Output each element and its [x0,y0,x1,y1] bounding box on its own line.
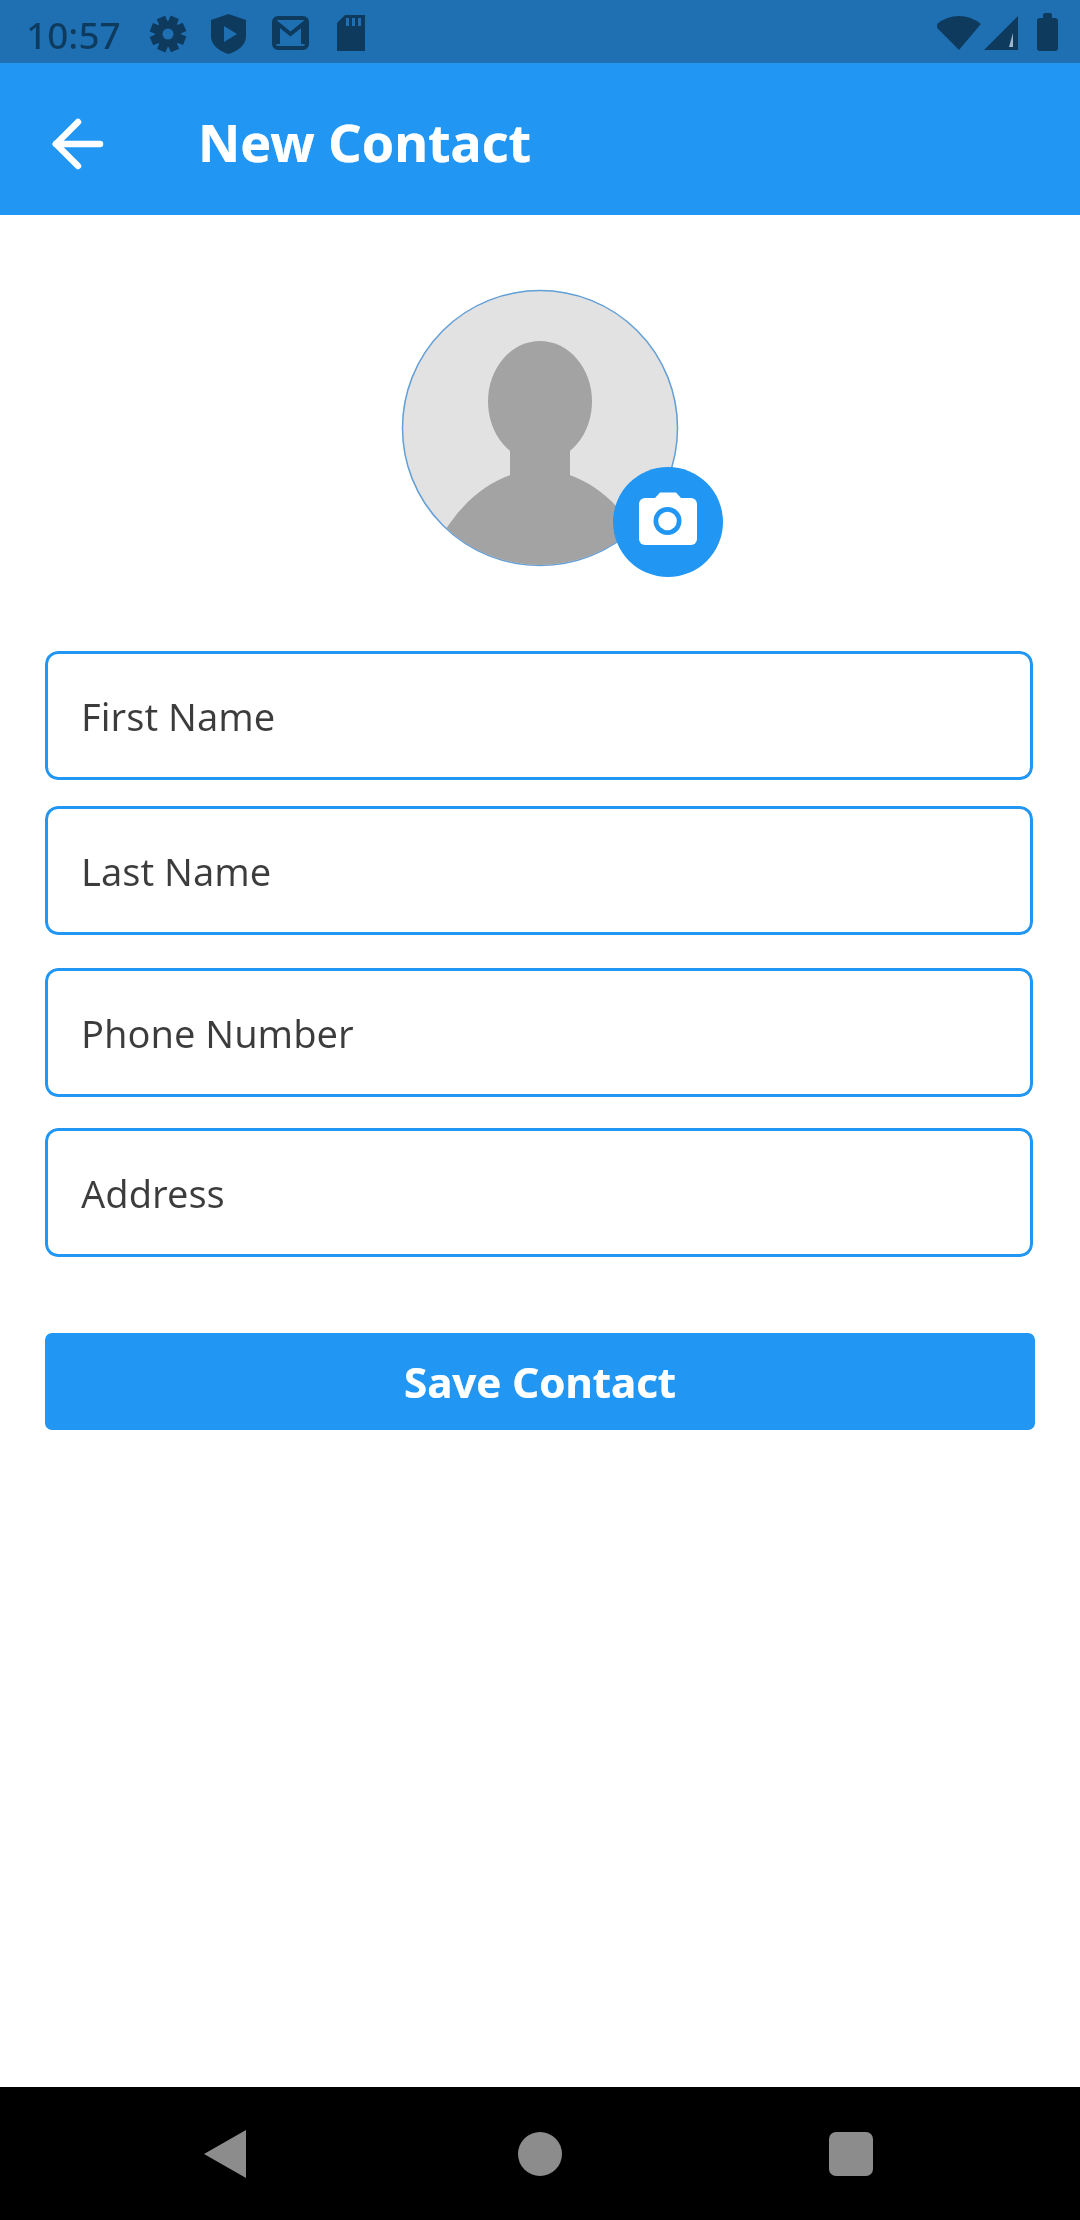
button[interactable]: Save Contact [45,1333,1035,1430]
staticText: New Contact [198,106,532,177]
button[interactable] [485,2089,595,2218]
button[interactable] [613,467,723,577]
button[interactable]: Phone Number [45,968,1033,1097]
staticText: Last Name [81,845,272,897]
staticText: Save Contact [404,1353,677,1410]
staticText: 10:57 [26,9,121,59]
staticText: Address [81,1167,225,1219]
staticText: Phone Number [81,1007,354,1059]
staticText: First Name [81,690,276,742]
button[interactable]: Address [45,1128,1033,1257]
button[interactable] [175,2089,285,2218]
button[interactable] [36,102,120,186]
button[interactable]: Last Name [45,806,1033,935]
button[interactable]: First Name [45,651,1033,780]
button[interactable] [796,2089,906,2218]
